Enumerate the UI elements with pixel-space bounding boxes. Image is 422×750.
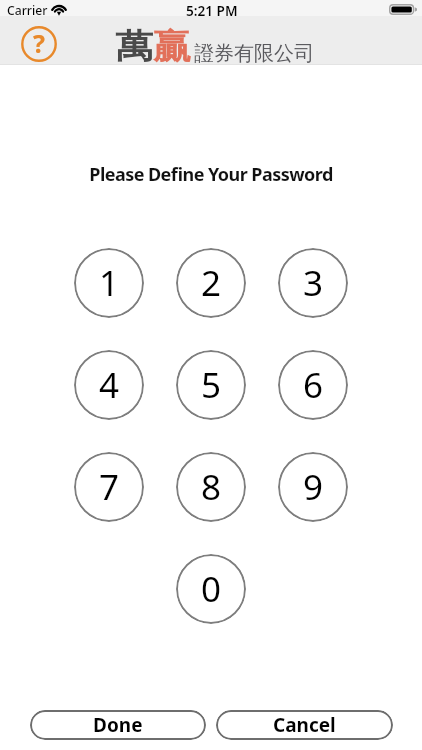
staticText: 4: [99, 361, 120, 409]
button[interactable]: 0: [176, 554, 246, 624]
staticText: 萬: [115, 25, 153, 67]
staticText: 贏: [153, 25, 191, 67]
button[interactable]: 4: [74, 350, 144, 420]
staticText: 3: [303, 259, 324, 307]
staticText: 7: [99, 463, 120, 511]
staticText: 2: [201, 259, 222, 307]
staticText: 0: [201, 565, 222, 613]
staticText: Please Define Your Password: [89, 162, 333, 187]
button[interactable]: 6: [278, 350, 348, 420]
button[interactable]: Help: [21, 26, 57, 62]
staticText: Done: [93, 712, 143, 738]
staticText: 6: [303, 361, 324, 409]
staticText: 證券有限公司: [194, 41, 314, 66]
staticText: Cancel: [273, 712, 336, 738]
staticText: 9: [303, 463, 324, 511]
staticText: ?: [33, 26, 45, 60]
button[interactable]: 9: [278, 452, 348, 522]
staticText: 5:21 PM: [186, 1, 238, 20]
button[interactable]: 3: [278, 248, 348, 318]
button[interactable]: 2: [176, 248, 246, 318]
staticText: 8: [201, 463, 222, 511]
button[interactable]: Done: [30, 710, 206, 740]
button[interactable]: Cancel: [216, 710, 393, 740]
staticText: 1: [99, 259, 120, 307]
staticText: Carrier: [7, 2, 48, 19]
button[interactable]: 5: [176, 350, 246, 420]
button[interactable]: 7: [74, 452, 144, 522]
button[interactable]: 1: [74, 248, 144, 318]
button[interactable]: 8: [176, 452, 246, 522]
staticText: 5: [201, 361, 222, 409]
